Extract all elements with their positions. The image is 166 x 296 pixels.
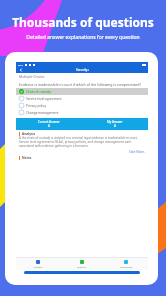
staticText: Thousands of questions [12, 14, 154, 30]
staticText: Evidence is inadmissible in court if whi… [19, 82, 141, 87]
button[interactable]: Privacy policy [16, 102, 148, 109]
staticText: Quizzes [77, 265, 87, 268]
staticText: Correct Answer [38, 120, 60, 124]
button[interactable]: Service level agreement [16, 95, 148, 102]
staticText: 9:41 [18, 63, 23, 66]
staticText: Security+ [76, 68, 89, 72]
staticText: My Answer [107, 120, 123, 124]
staticText: Notes [22, 156, 32, 160]
staticText: Analysis [22, 132, 36, 136]
staticText: Multiple Choice [19, 74, 45, 79]
staticText: Privacy policy [26, 104, 47, 108]
staticText: A the chain of custody is violated in a … [19, 136, 145, 148]
staticText: Service level agreement [26, 97, 62, 101]
button[interactable]: Review [16, 258, 60, 270]
staticText: Flashcards [120, 265, 133, 268]
staticText: Change management [26, 111, 59, 115]
button[interactable]: Back [18, 67, 24, 73]
staticText: A [114, 124, 116, 128]
button[interactable]: Flashcards [104, 258, 148, 270]
button[interactable]: Chain of custody [16, 88, 148, 95]
staticText: A [48, 124, 50, 128]
staticText: Review [34, 265, 43, 268]
button[interactable]: Quizzes [60, 258, 104, 270]
button[interactable]: Change management [16, 109, 148, 116]
button[interactable]: Take Notes [129, 150, 145, 154]
staticText: Chain of custody [26, 90, 51, 94]
staticText: Detailed answer explanations for every q… [26, 34, 140, 41]
